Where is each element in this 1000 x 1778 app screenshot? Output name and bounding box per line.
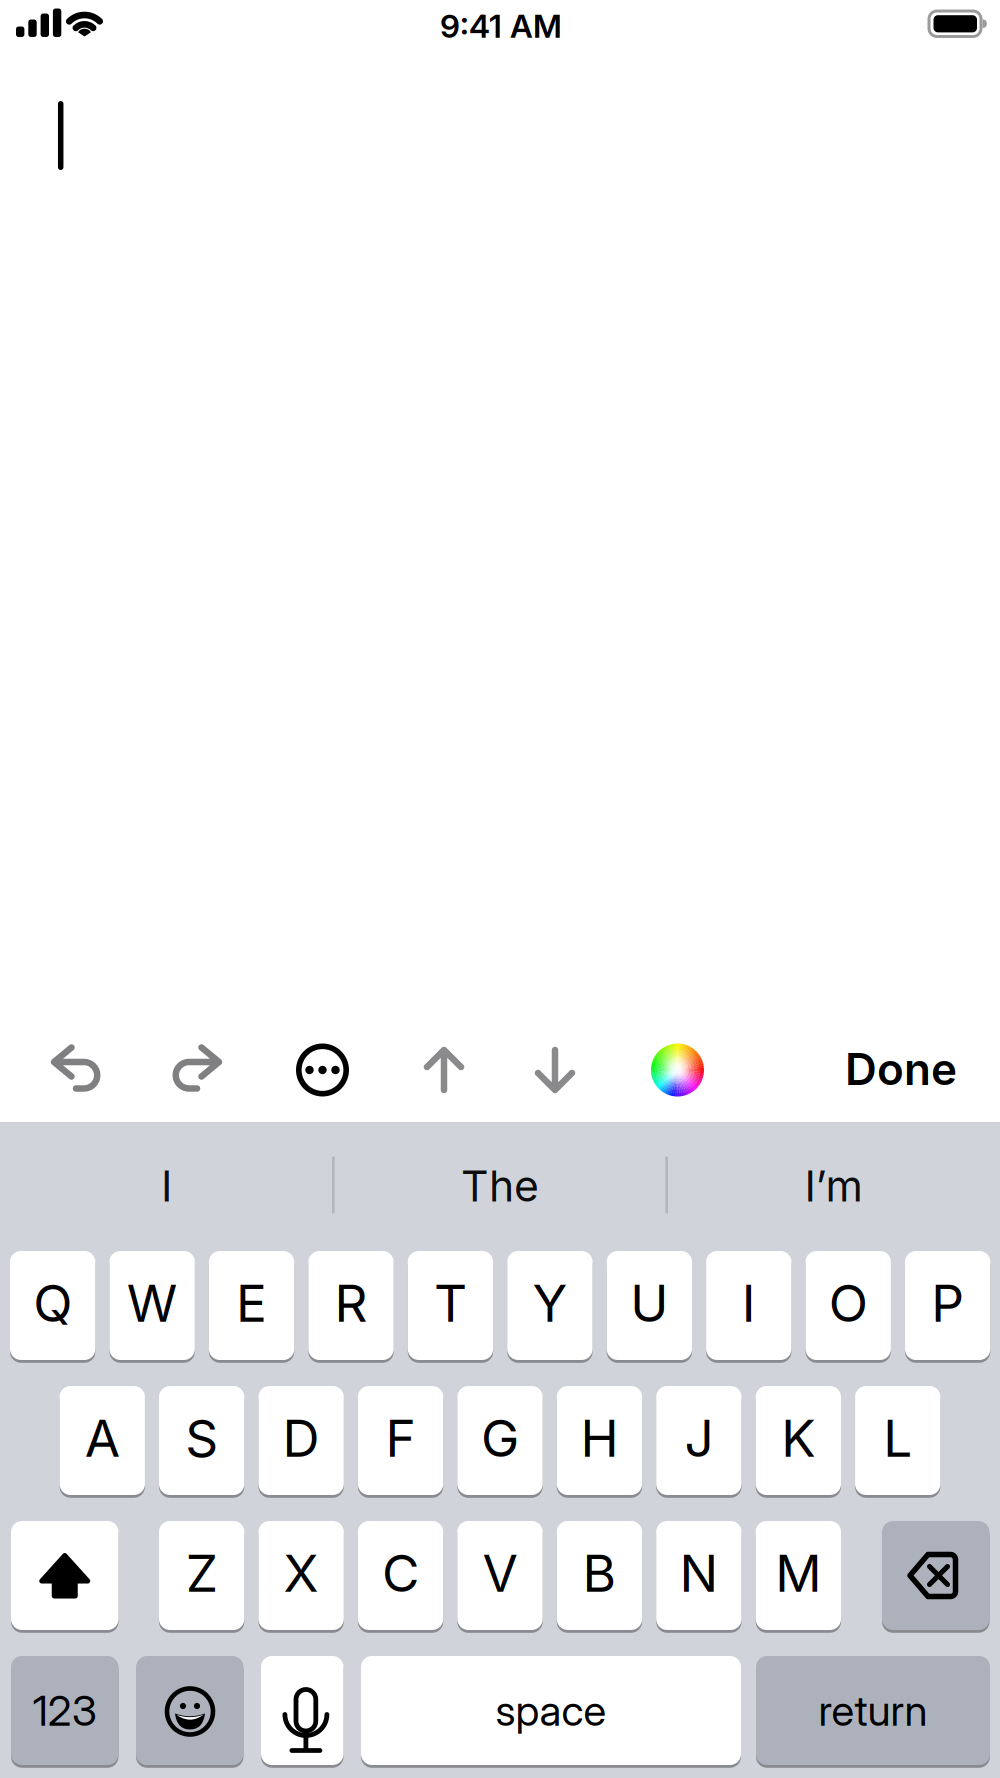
- button[interactable]: The: [340, 1126, 660, 1246]
- staticText: H: [580, 1407, 618, 1469]
- button[interactable]: Q: [10, 1251, 95, 1360]
- button[interactable]: N: [656, 1521, 742, 1630]
- staticText: E: [236, 1272, 267, 1334]
- staticText: A: [85, 1407, 120, 1469]
- button[interactable]: I: [706, 1251, 791, 1360]
- staticText: 9:41 AM: [440, 7, 562, 45]
- staticText: Y: [532, 1272, 567, 1334]
- button[interactable]: X: [258, 1521, 344, 1630]
- button[interactable]: M: [756, 1521, 841, 1630]
- button[interactable]: R: [308, 1251, 394, 1360]
- button[interactable]: I’m: [673, 1126, 993, 1246]
- staticText: L: [883, 1407, 912, 1469]
- button[interactable]: W: [109, 1251, 195, 1360]
- button[interactable]: H: [557, 1386, 642, 1495]
- staticText: I: [161, 1160, 172, 1212]
- button[interactable]: G: [457, 1386, 543, 1495]
- button[interactable]: [261, 1656, 343, 1765]
- staticText: K: [781, 1407, 815, 1469]
- button[interactable]: [882, 1521, 989, 1630]
- staticText: D: [283, 1407, 320, 1469]
- button[interactable]: A: [59, 1386, 145, 1495]
- button[interactable]: [46, 1040, 106, 1100]
- staticText: B: [582, 1542, 616, 1604]
- button[interactable]: K: [756, 1386, 841, 1495]
- button[interactable]: Z: [159, 1521, 244, 1630]
- staticText: V: [482, 1542, 517, 1604]
- button[interactable]: B: [557, 1521, 642, 1630]
- button[interactable]: [167, 1040, 227, 1100]
- button[interactable]: O: [805, 1251, 891, 1360]
- button[interactable]: [136, 1656, 243, 1765]
- staticText: O: [829, 1272, 868, 1334]
- staticText: M: [775, 1542, 821, 1604]
- staticText: Done: [845, 1042, 957, 1096]
- button[interactable]: [650, 1043, 704, 1097]
- button[interactable]: [292, 1040, 352, 1100]
- button[interactable]: [11, 1521, 118, 1630]
- staticText: J: [684, 1407, 713, 1469]
- staticText: N: [679, 1542, 718, 1604]
- button[interactable]: F: [358, 1386, 443, 1495]
- staticText: R: [334, 1272, 367, 1334]
- staticText: S: [185, 1407, 218, 1469]
- staticText: The: [461, 1160, 539, 1212]
- staticText: U: [630, 1272, 668, 1334]
- staticText: I: [742, 1272, 756, 1334]
- button[interactable]: U: [607, 1251, 692, 1360]
- staticText: G: [481, 1407, 519, 1469]
- button[interactable]: P: [905, 1251, 990, 1360]
- staticText: F: [386, 1407, 416, 1469]
- button[interactable]: I: [6, 1126, 326, 1246]
- staticText: Z: [186, 1542, 218, 1604]
- button[interactable]: Y: [507, 1251, 593, 1360]
- button[interactable]: 123: [11, 1656, 118, 1765]
- staticText: space: [495, 1685, 606, 1736]
- button[interactable]: return: [756, 1656, 990, 1765]
- button[interactable]: D: [258, 1386, 344, 1495]
- button[interactable]: space: [361, 1656, 741, 1765]
- staticText: return: [818, 1685, 927, 1736]
- staticText: Q: [33, 1272, 72, 1334]
- button[interactable]: S: [159, 1386, 244, 1495]
- button[interactable]: V: [457, 1521, 543, 1630]
- staticText: I’m: [804, 1160, 862, 1212]
- staticText: X: [284, 1542, 319, 1604]
- staticText: C: [382, 1542, 419, 1604]
- staticText: T: [434, 1272, 467, 1334]
- button[interactable]: C: [358, 1521, 443, 1630]
- staticText: W: [127, 1272, 178, 1334]
- button[interactable]: L: [855, 1386, 940, 1495]
- button[interactable]: J: [656, 1386, 742, 1495]
- button[interactable]: E: [209, 1251, 294, 1360]
- button[interactable]: [422, 1046, 466, 1094]
- button[interactable]: [533, 1046, 577, 1094]
- button[interactable]: T: [408, 1251, 493, 1360]
- staticText: 123: [33, 1685, 97, 1736]
- button[interactable]: Done: [845, 1042, 957, 1096]
- staticText: P: [931, 1272, 964, 1334]
